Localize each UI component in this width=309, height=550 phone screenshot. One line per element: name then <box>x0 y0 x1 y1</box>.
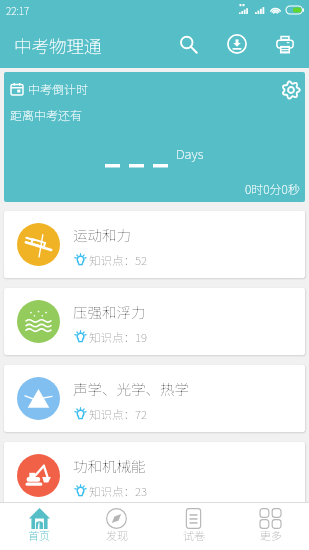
staticText: 知识点：52 <box>89 252 147 269</box>
staticText: 0时0分0秒 <box>245 180 300 197</box>
staticText: 试卷 <box>183 527 205 543</box>
staticText: 发现 <box>106 527 128 543</box>
staticText: 更多 <box>260 527 282 543</box>
staticText: 功和机械能 <box>73 455 146 476</box>
button[interactable]: Settings <box>280 79 302 101</box>
button[interactable]: 首页 <box>0 503 78 550</box>
staticText: 运动和力 <box>73 224 131 245</box>
staticText: 压强和浮力 <box>73 301 146 322</box>
staticText: 知识点：19 <box>89 329 147 346</box>
button[interactable]: 发现 <box>78 503 155 550</box>
staticText: 首页 <box>28 527 50 543</box>
staticText: 中考物理通 <box>14 33 102 58</box>
button[interactable]: Search <box>165 22 213 68</box>
button[interactable]: 试卷 <box>155 503 232 550</box>
staticText: 22:17 <box>6 3 30 17</box>
staticText: Days <box>176 144 204 163</box>
button[interactable]: Print <box>261 22 309 68</box>
staticText: 知识点：23 <box>89 483 147 500</box>
staticText: 声学、光学、热学 <box>73 378 189 399</box>
button[interactable]: 更多 <box>232 503 309 550</box>
button[interactable]: 声学、光学、热学 <box>4 365 305 432</box>
button[interactable]: Download <box>213 21 261 67</box>
staticText: 中考倒计时 <box>28 80 89 97</box>
button[interactable]: 运动和力 <box>4 211 305 278</box>
button[interactable]: 压强和浮力 <box>4 288 305 355</box>
staticText: 距离中考还有 <box>10 106 83 123</box>
staticText: 知识点：72 <box>89 406 147 423</box>
button[interactable]: 中考倒计时 <box>4 72 305 202</box>
button[interactable]: 功和机械能 <box>4 442 305 509</box>
